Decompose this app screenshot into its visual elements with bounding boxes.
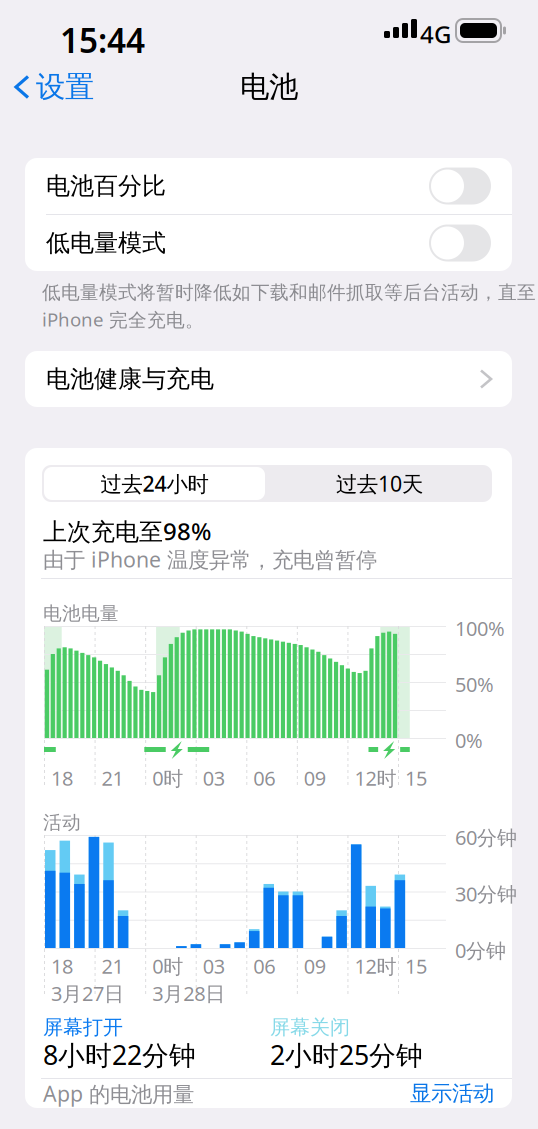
staticText: 0分钟: [455, 937, 506, 964]
staticText: 低电量模式: [46, 228, 166, 258]
staticText: 屏幕打开: [43, 1015, 123, 1040]
staticText: 18: [51, 953, 73, 979]
staticText: 由于 iPhone 温度异常，充电曾暂停: [43, 545, 377, 573]
staticText: 0时: [152, 765, 183, 791]
button[interactable]: 低电量模式: [25, 215, 512, 271]
button[interactable]: 设置: [2, 64, 108, 110]
staticText: 电池健康与充电: [46, 364, 214, 394]
button[interactable]: 显示活动: [410, 1074, 494, 1113]
staticText: 电池: [240, 69, 298, 105]
staticText: App 的电池用量: [43, 1079, 194, 1108]
staticText: 屏幕关闭: [270, 1015, 350, 1040]
staticText: 电池电量: [43, 602, 119, 625]
staticText: 4G: [420, 18, 451, 50]
staticText: 15:44: [60, 18, 145, 62]
staticText: 50%: [455, 671, 494, 698]
staticText: 21: [102, 765, 124, 791]
staticText: 0%: [455, 727, 483, 754]
staticText: 3月28日: [152, 980, 225, 1007]
staticText: 设置: [36, 69, 94, 105]
staticText: iPhone 完全充电。: [42, 307, 204, 332]
staticText: 03: [203, 765, 225, 791]
staticText: 09: [304, 765, 326, 791]
button[interactable]: 电池健康与充电: [25, 351, 512, 407]
staticText: 100%: [455, 615, 505, 642]
staticText: 18: [51, 765, 73, 791]
staticText: 过去10天: [336, 469, 423, 498]
staticText: 06: [253, 765, 275, 791]
staticText: 30分钟: [455, 880, 517, 907]
staticText: 60分钟: [455, 824, 517, 851]
staticText: 06: [253, 953, 275, 979]
staticText: 电池百分比: [46, 171, 166, 201]
staticText: 03: [203, 953, 225, 979]
staticText: 8小时22分钟: [43, 1037, 196, 1072]
staticText: 低电量模式将暂时降低如下载和邮件抓取等后台活动，直至: [42, 281, 536, 304]
button[interactable]: 电池百分比: [25, 158, 512, 214]
staticText: 0时: [152, 953, 183, 979]
button[interactable]: 过去24小时: [44, 467, 265, 500]
staticText: 2小时25分钟: [270, 1037, 423, 1072]
staticText: 过去24小时: [100, 469, 208, 498]
staticText: 09: [304, 953, 326, 979]
staticText: 3月27日: [51, 980, 124, 1007]
staticText: 12时: [354, 953, 396, 979]
staticText: 上次充电至98%: [43, 515, 211, 547]
staticText: 15: [405, 953, 427, 979]
staticText: 活动: [43, 811, 81, 834]
staticText: 显示活动: [410, 1080, 494, 1107]
button[interactable]: 过去10天: [269, 467, 490, 500]
staticText: 15: [405, 765, 427, 791]
staticText: 21: [102, 953, 124, 979]
staticText: 12时: [354, 765, 396, 791]
